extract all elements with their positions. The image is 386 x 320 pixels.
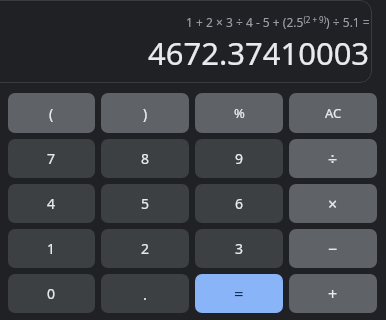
staticText: %	[234, 104, 245, 122]
button[interactable]: 7	[8, 139, 95, 178]
staticText: 6	[235, 194, 244, 213]
staticText: 4672.37410003	[148, 32, 370, 74]
staticText: .	[143, 284, 148, 304]
staticText: 7	[47, 149, 56, 168]
button[interactable]: .	[101, 274, 189, 313]
staticText: =	[234, 282, 244, 305]
staticText: 1	[47, 239, 56, 258]
button[interactable]: 8	[101, 139, 189, 178]
button[interactable]: 6	[195, 184, 283, 223]
button[interactable]: Subtract	[289, 229, 377, 268]
button[interactable]: 0	[8, 274, 95, 313]
button[interactable]: Equals	[195, 274, 283, 313]
staticText: +	[328, 283, 338, 305]
button[interactable]: Divide	[289, 139, 377, 178]
staticText: 1 + 2 × 3 ÷ 4 - 5 + (2.5(2 + 9)) ÷ 5.1 =	[186, 14, 370, 30]
staticText: 5	[141, 194, 150, 213]
staticText: −	[328, 238, 338, 260]
staticText: 9	[235, 149, 244, 168]
button[interactable]: Percent	[195, 93, 283, 133]
staticText: AC	[325, 104, 342, 122]
button[interactable]: 9	[195, 139, 283, 178]
button[interactable]: 4	[8, 184, 95, 223]
button[interactable]: Multiply	[289, 184, 377, 223]
staticText: 4	[47, 194, 56, 213]
button[interactable]: 1	[8, 229, 95, 268]
button[interactable]: )	[101, 93, 189, 133]
staticText: 0	[47, 284, 56, 303]
staticText: (	[49, 104, 54, 123]
staticText: 2	[141, 239, 150, 258]
staticText: )	[143, 104, 148, 123]
button[interactable]: Add	[289, 274, 377, 313]
staticText: ÷	[328, 148, 338, 170]
staticText: ×	[328, 193, 338, 215]
button[interactable]: AC	[289, 93, 377, 133]
button[interactable]: 5	[101, 184, 189, 223]
button[interactable]: 3	[195, 229, 283, 268]
button[interactable]: (	[8, 93, 95, 133]
staticText: 8	[141, 149, 150, 168]
button[interactable]: 2	[101, 229, 189, 268]
staticText: 3	[235, 239, 244, 258]
